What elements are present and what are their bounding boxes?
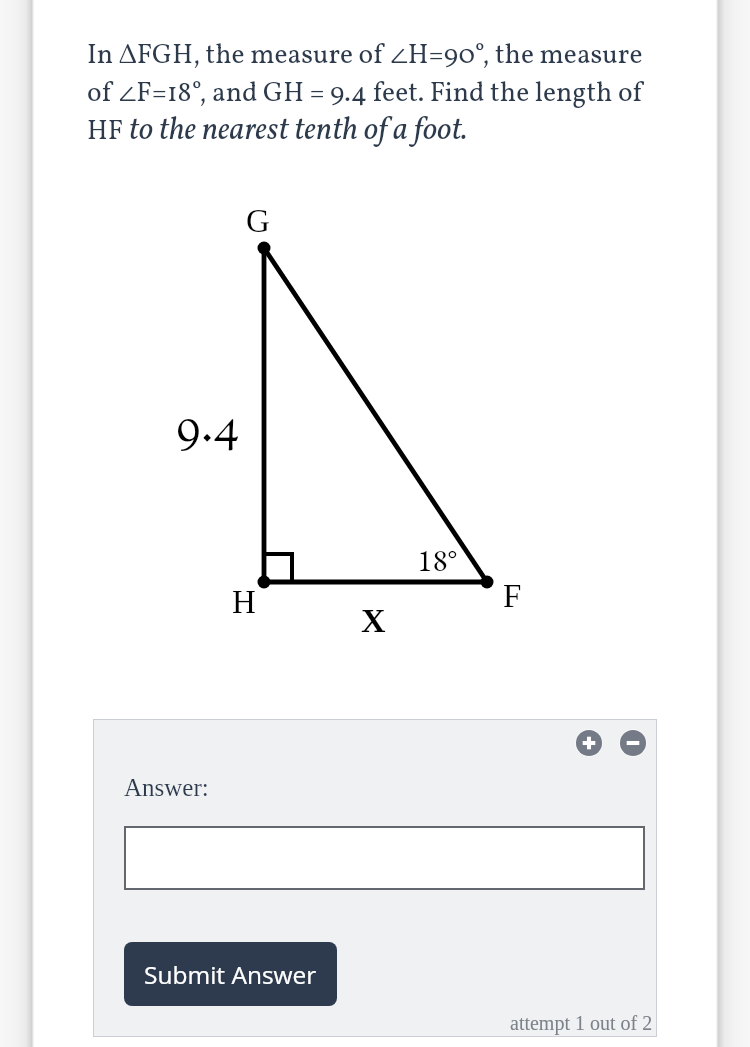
staticText: 18°: [417, 539, 458, 581]
staticText: X: [361, 602, 386, 640]
staticText: attempt 1 out of 2: [510, 1012, 653, 1034]
staticText: Submit Answer: [144, 958, 317, 991]
staticText: H: [232, 584, 256, 621]
button[interactable]: [124, 826, 645, 890]
staticText: G: [246, 203, 270, 240]
button[interactable]: Submit Answer: [124, 942, 337, 1006]
staticText: In ΔFGH, the measure of ∠H=90°, the meas…: [87, 33, 659, 153]
staticText: Answer:: [124, 774, 209, 802]
staticText: F: [503, 578, 522, 615]
staticText: 9.4: [176, 392, 240, 465]
button[interactable]: Zoom out: [618, 728, 648, 758]
button[interactable]: Zoom in: [574, 728, 604, 758]
